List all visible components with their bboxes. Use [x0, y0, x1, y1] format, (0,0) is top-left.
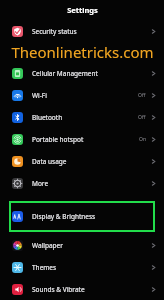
button[interactable]: Themes [0, 256, 164, 278]
staticText: Cellular Management [32, 69, 98, 78]
staticText: Bluetooth [32, 113, 63, 122]
staticText: Security status [32, 27, 77, 36]
button[interactable]: Wallpaper [0, 234, 164, 256]
staticText: Portable hotspot [32, 135, 84, 144]
button[interactable]: Portable hotspot [0, 128, 164, 150]
button[interactable]: Cellular Management [0, 62, 164, 84]
staticText: Theonlinetricks.com [11, 42, 154, 62]
staticText: Sounds & Vibrate [32, 285, 85, 294]
staticText: Off [138, 114, 146, 121]
staticText: Wi-Fi [32, 91, 47, 100]
staticText: Data usage [32, 157, 67, 166]
staticText: Wallpaper [32, 241, 63, 250]
button[interactable]: Sounds & Vibrate [0, 278, 164, 300]
staticText: Themes [32, 263, 57, 272]
button[interactable]: Display & Brightness [9, 201, 155, 232]
staticText: Off [138, 92, 146, 99]
staticText: More [32, 179, 49, 188]
staticText: On [139, 136, 146, 143]
button[interactable]: Wi-Fi [0, 84, 164, 106]
staticText: Settings [67, 5, 98, 15]
button[interactable]: Bluetooth [0, 106, 164, 128]
staticText: Display & Brightness [32, 212, 96, 221]
button[interactable]: More [0, 172, 164, 194]
button[interactable]: Data usage [0, 150, 164, 172]
button[interactable]: Security status [0, 20, 164, 42]
